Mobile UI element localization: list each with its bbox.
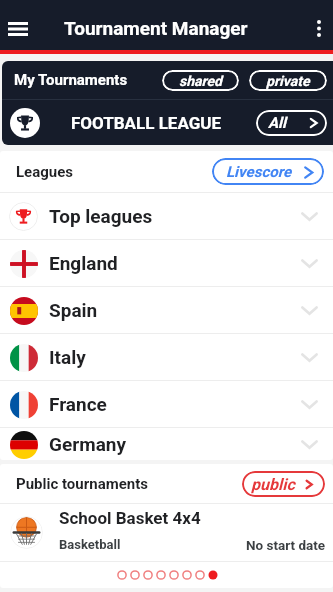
staticText: England [49,252,118,274]
staticText: FOOTBALL LEAGUE [71,113,222,133]
staticText: School Basket 4x4 [59,508,201,528]
button[interactable]: FOOTBALL LEAGUE [2,100,333,145]
button[interactable]: public [242,471,325,497]
button[interactable]: Top leagues [0,193,333,239]
staticText: France [49,393,107,415]
button[interactable]: England [0,240,333,286]
button[interactable]: private [249,70,327,91]
staticText: Top leagues [49,205,153,227]
button[interactable]: All [256,110,327,136]
button[interactable]: My Tournaments [2,61,333,99]
button[interactable]: More options [304,13,333,43]
staticText: Livescore [226,163,292,181]
staticText: Public tournaments [16,475,148,493]
staticText: Spain [49,299,98,321]
staticText: Italy [49,346,86,368]
button[interactable]: Livescore [212,158,324,185]
staticText: Basketball [59,537,121,552]
button[interactable]: School Basket 4x4 [0,504,333,561]
staticText: All [268,114,287,132]
button[interactable]: Menu [2,13,33,44]
button[interactable]: Germany [0,428,333,460]
button[interactable]: Spain [0,287,333,333]
staticText: public [251,475,295,494]
button[interactable]: Leagues [0,151,333,192]
button[interactable]: Italy [0,334,333,380]
button[interactable]: France [0,381,333,427]
staticText: shared [179,73,222,89]
staticText: Germany [49,433,127,455]
staticText: Leagues [16,163,74,181]
button[interactable]: shared [162,70,239,91]
button[interactable]: Public tournaments [0,464,333,503]
staticText: My Tournaments [14,71,128,89]
staticText: private [266,73,310,89]
staticText: No start date [246,537,326,553]
staticText: Tournament Manager [64,17,248,39]
